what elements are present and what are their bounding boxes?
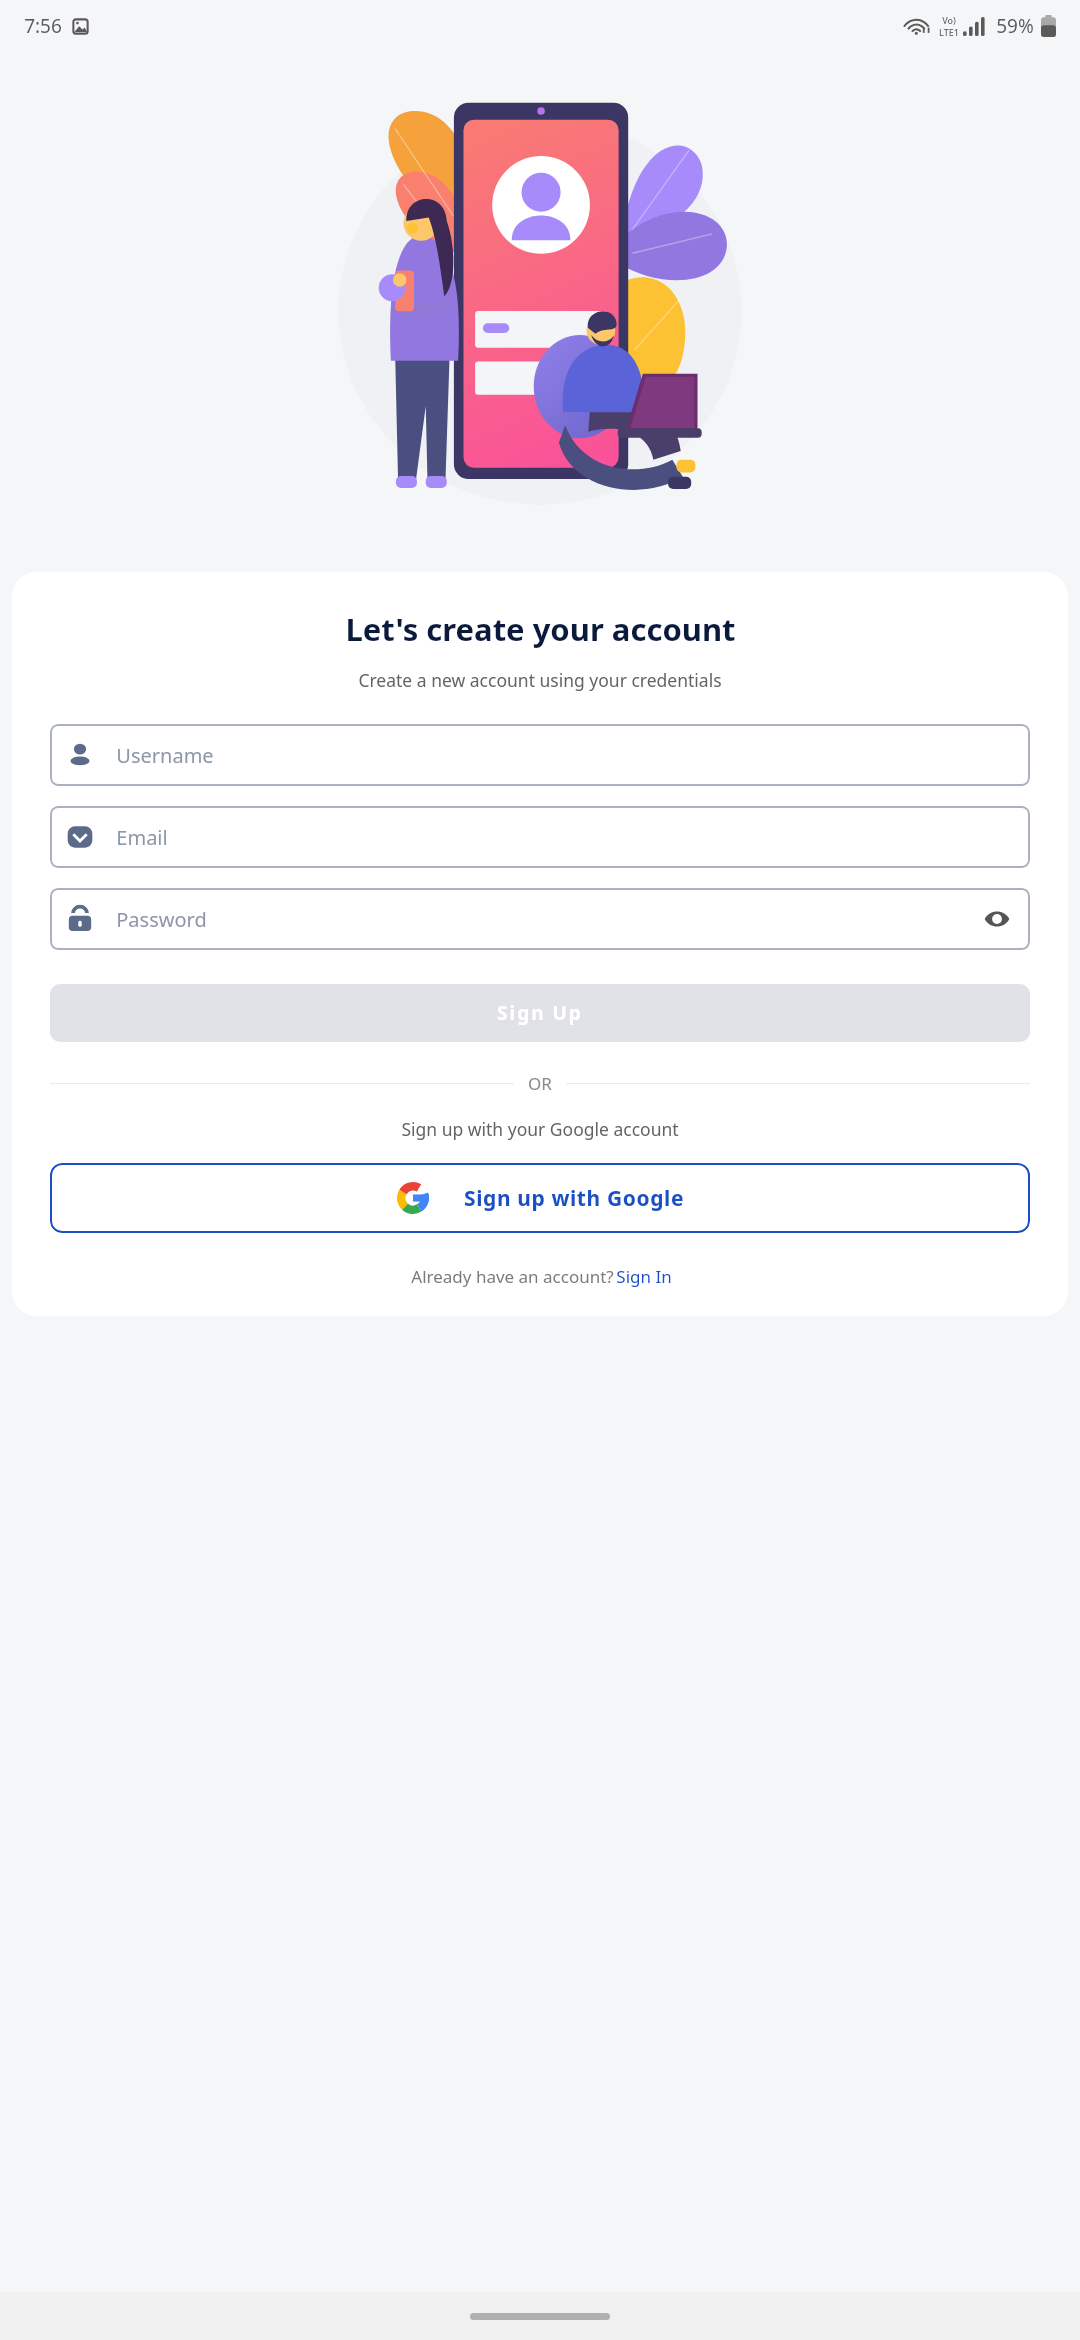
button[interactable]: Sign up with Google: [50, 1163, 1030, 1233]
staticText: Email: [116, 824, 168, 851]
button[interactable]: Username: [50, 724, 1030, 786]
staticText: Let's create your account: [345, 608, 736, 650]
staticText: Sign Up: [497, 1000, 583, 1026]
staticText: OR: [528, 1072, 552, 1095]
button[interactable]: Show password: [980, 902, 1014, 936]
staticText: LTE1: [939, 26, 959, 38]
staticText: 59%: [996, 13, 1034, 39]
staticText: Sign up with your Google account: [401, 1117, 679, 1141]
button[interactable]: Password: [50, 888, 1030, 950]
staticText: Already have an account?: [409, 1265, 616, 1288]
staticText: Create a new account using your credenti…: [358, 668, 722, 692]
staticText: Username: [116, 742, 214, 769]
staticText: Password: [116, 906, 207, 933]
button[interactable]: Email: [50, 806, 1030, 868]
button[interactable]: Already have an account?: [409, 1265, 672, 1288]
staticText: Sign In: [616, 1265, 672, 1288]
staticText: Sign up with Google: [464, 1184, 685, 1213]
staticText: 7:56: [24, 13, 62, 39]
staticText: Vo): [942, 14, 956, 26]
